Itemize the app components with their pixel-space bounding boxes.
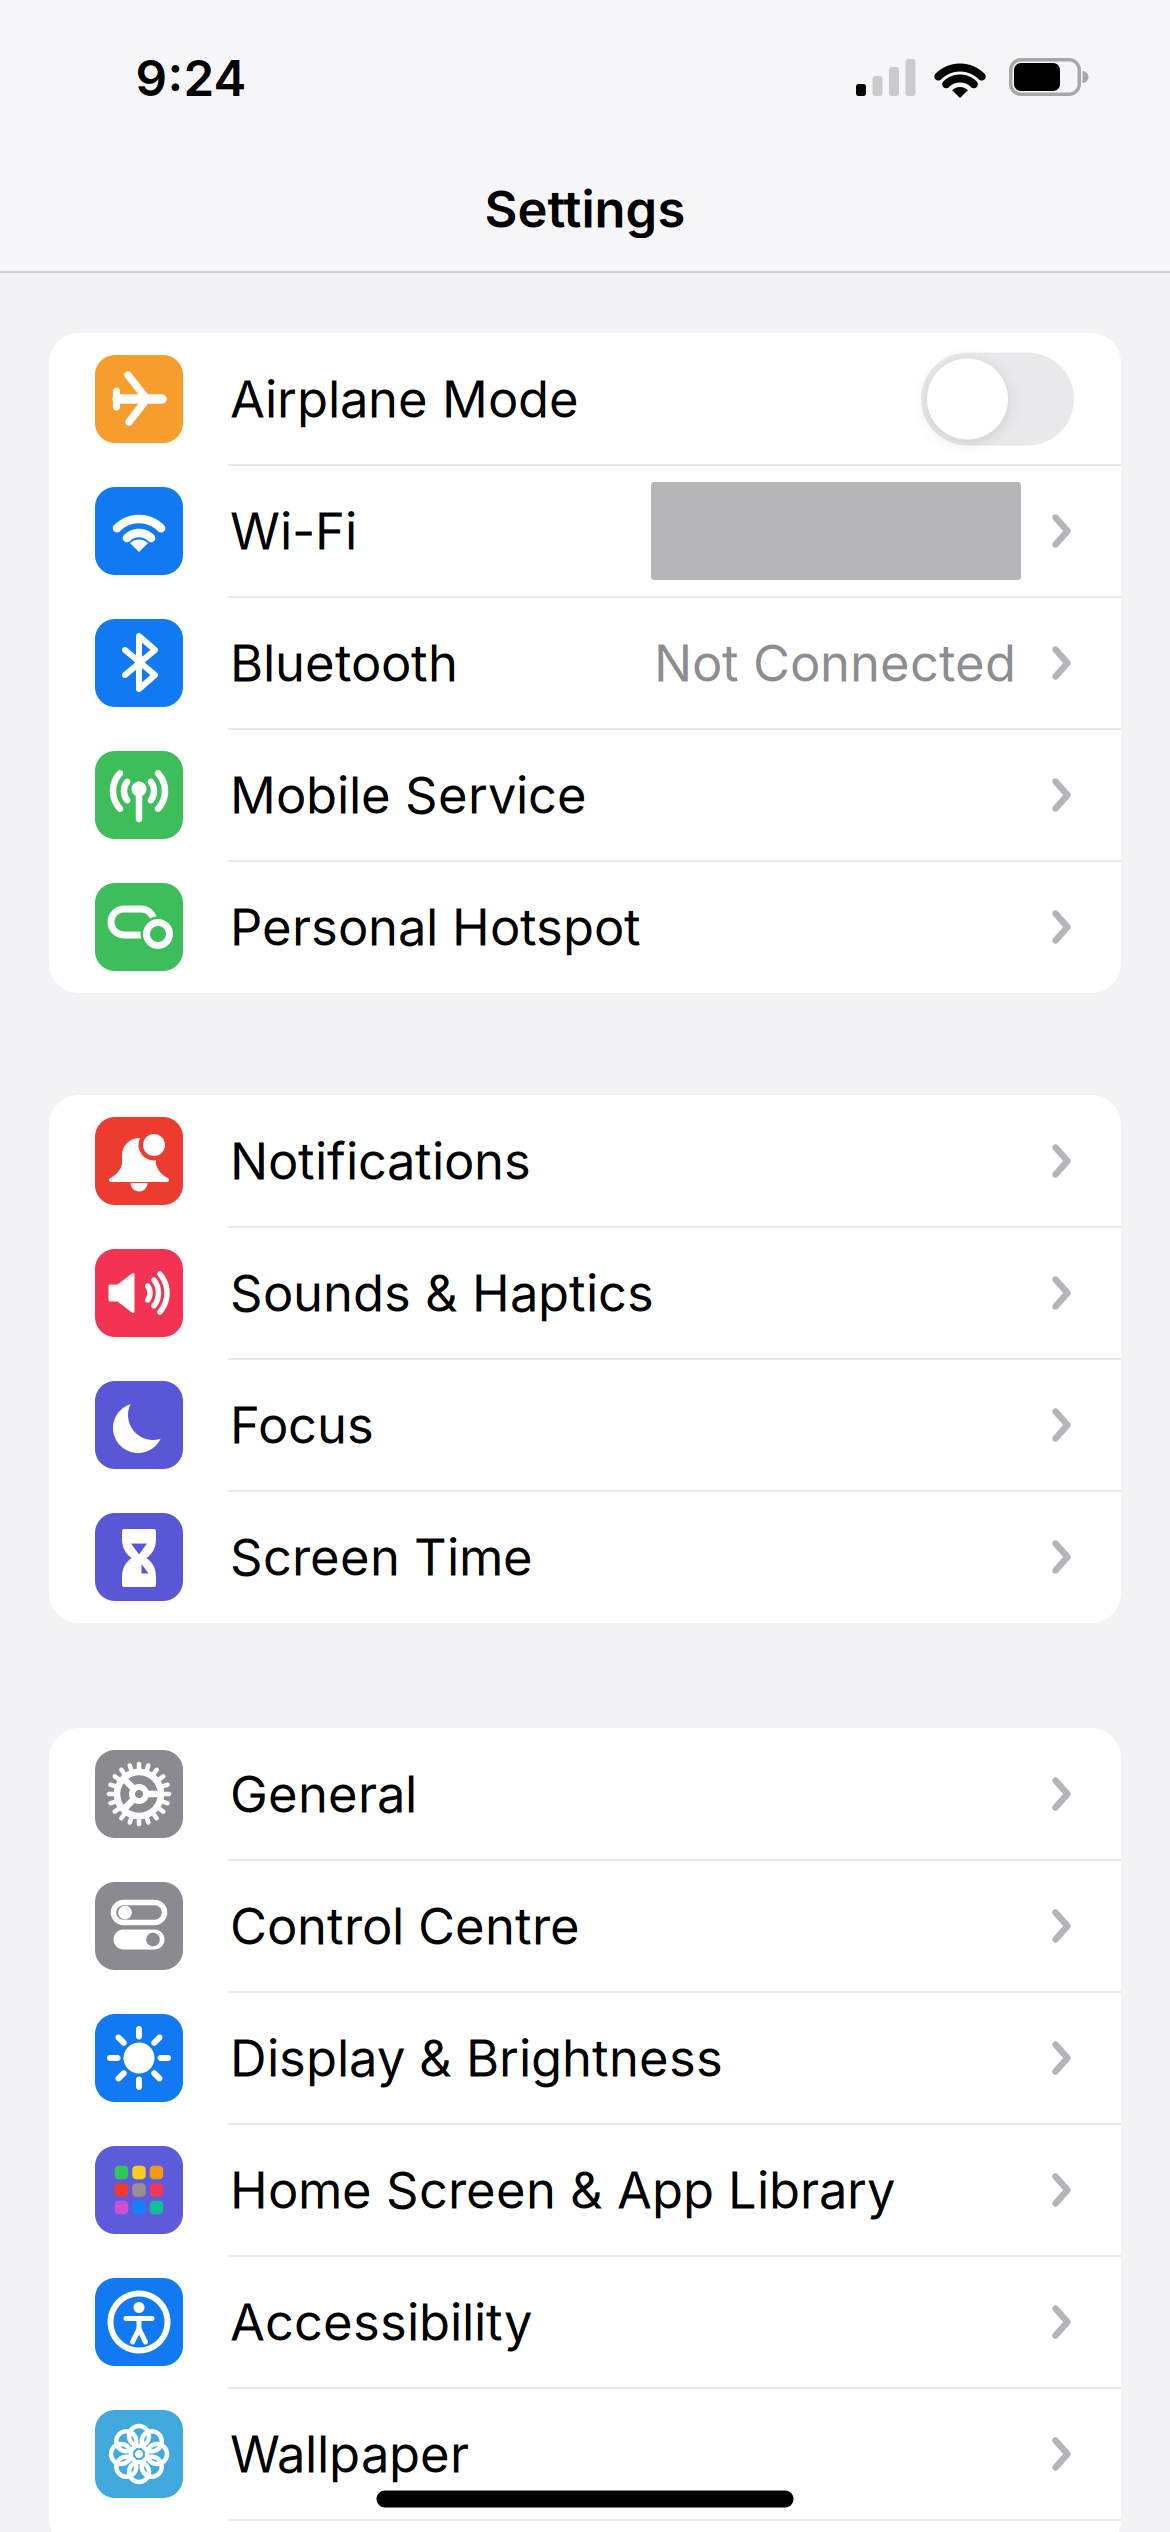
staticText: Personal Hotspot — [230, 897, 641, 957]
button[interactable]: Notifications — [49, 1095, 1121, 1227]
staticText: Focus — [230, 1395, 374, 1455]
staticText: Wi-Fi — [230, 501, 357, 561]
button[interactable]: Accessibility — [49, 2256, 1121, 2388]
button[interactable]: Display & Brightness — [49, 1992, 1121, 2124]
staticText: Mobile Service — [230, 765, 587, 825]
staticText: Bluetooth — [230, 633, 458, 693]
button[interactable]: Bluetooth — [49, 597, 1121, 729]
button[interactable]: Mobile Service — [49, 729, 1121, 861]
staticText: Accessibility — [230, 2292, 532, 2352]
button[interactable]: Personal Hotspot — [49, 861, 1121, 993]
staticText: 9:24 — [135, 49, 246, 107]
button[interactable]: Wallpaper — [49, 2388, 1121, 2520]
staticText: Not Connected — [654, 633, 1016, 693]
staticText: Airplane Mode — [230, 369, 579, 429]
button[interactable]: Home Screen & App Library — [49, 2124, 1121, 2256]
staticText: Screen Time — [230, 1527, 533, 1587]
button[interactable]: Sounds & Haptics — [49, 1227, 1121, 1359]
button[interactable]: General — [49, 1728, 1121, 1860]
staticText: Wallpaper — [230, 2424, 469, 2484]
staticText: Notifications — [230, 1131, 531, 1191]
button[interactable]: Wi-Fi — [49, 465, 1121, 597]
button[interactable]: Control Centre — [49, 1860, 1121, 1992]
button[interactable]: Screen Time — [49, 1491, 1121, 1623]
staticText: Home Screen & App Library — [230, 2160, 895, 2220]
button[interactable]: Focus — [49, 1359, 1121, 1491]
staticText: General — [230, 1764, 417, 1824]
staticText: Settings — [484, 179, 685, 239]
staticText: Display & Brightness — [230, 2028, 723, 2088]
staticText: Sounds & Haptics — [230, 1263, 654, 1323]
staticText: Control Centre — [230, 1896, 580, 1956]
button[interactable]: Airplane Mode — [921, 352, 1074, 445]
